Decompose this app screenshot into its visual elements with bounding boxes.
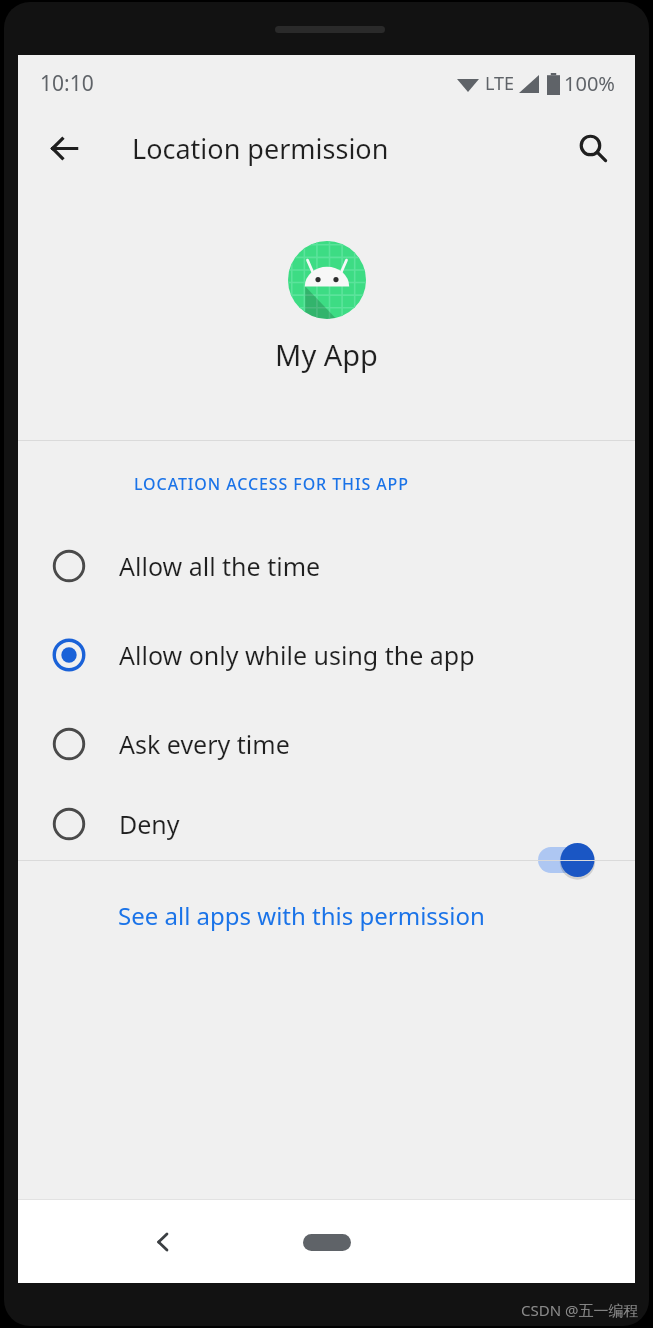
staticText: Deny [119,807,180,841]
button[interactable]: Search [569,124,617,172]
staticText: My App [275,335,378,374]
staticText: LTE [485,71,515,96]
staticText: LOCATION ACCESS FOR THIS APP [134,473,409,495]
button[interactable]: Back [40,124,88,172]
button[interactable]: Home [295,1227,359,1257]
button[interactable]: Deny [18,788,635,860]
staticText: Allow only while using the app [119,638,475,672]
button[interactable]: Allow only while using the app [18,610,635,699]
staticText: CSDN @五一编程 [521,1300,639,1320]
staticText: Location permission [132,130,389,167]
staticText: 10:10 [40,69,94,98]
button[interactable]: Back [140,1219,186,1265]
staticText: Allow all the time [119,549,321,583]
staticText: See all apps with this permission [118,899,485,932]
button[interactable]: Ask every time [18,699,635,788]
staticText: 100% [564,70,615,97]
button[interactable]: See all apps with this permission [18,861,635,969]
staticText: Ask every time [119,727,290,761]
button[interactable]: Allow all the time [18,521,635,610]
